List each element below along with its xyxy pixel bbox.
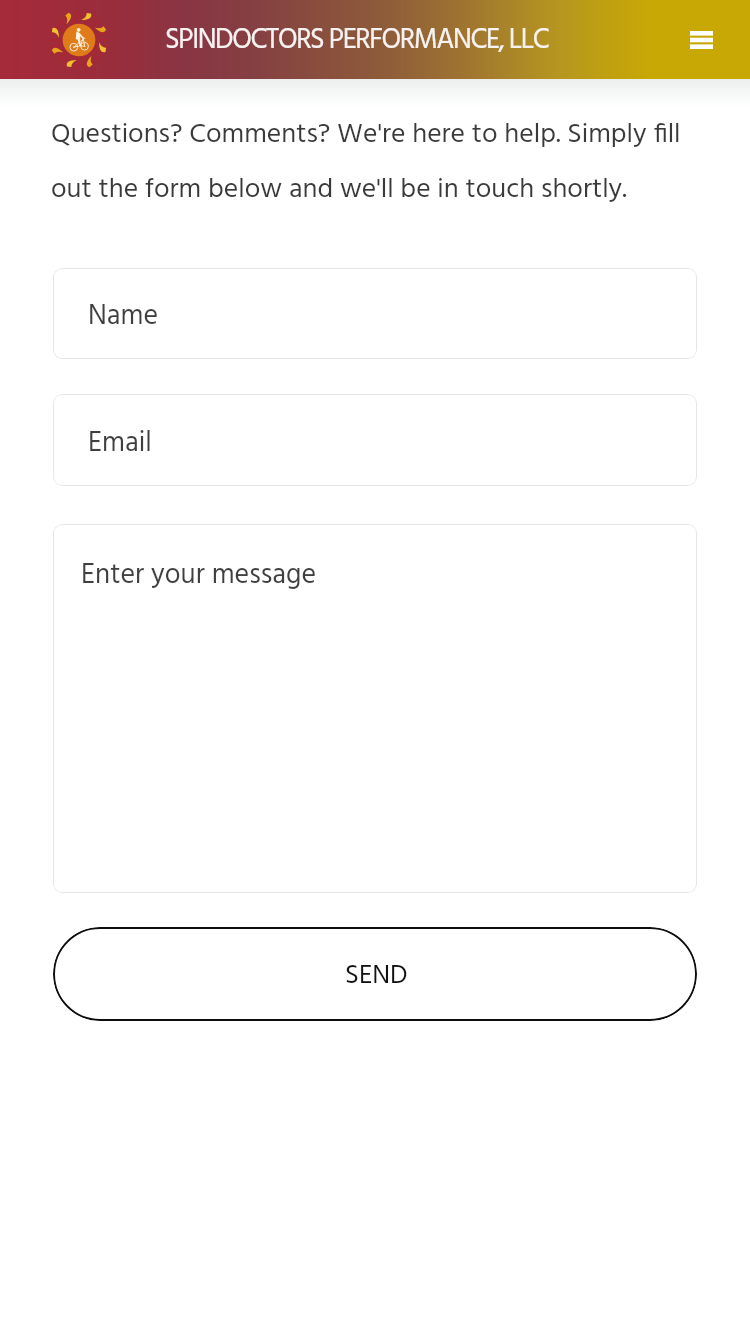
staticText: Questions? Comments? We're here to help.… xyxy=(51,113,699,212)
staticText: Email xyxy=(88,421,152,466)
button[interactable]: Email xyxy=(53,394,697,486)
staticText: Enter your message xyxy=(81,553,317,598)
button[interactable]: Open navigation menu xyxy=(666,13,737,66)
button[interactable]: SEND xyxy=(53,927,697,1021)
staticText: SEND xyxy=(345,955,408,997)
button[interactable]: Enter your message xyxy=(53,524,697,893)
button[interactable]: SpinDoctors Performance home xyxy=(46,7,112,73)
button[interactable]: Name xyxy=(53,268,697,359)
staticText: Name xyxy=(88,294,159,339)
staticText: SPINDOCTORS PERFORMANCE, LLC xyxy=(165,18,549,63)
